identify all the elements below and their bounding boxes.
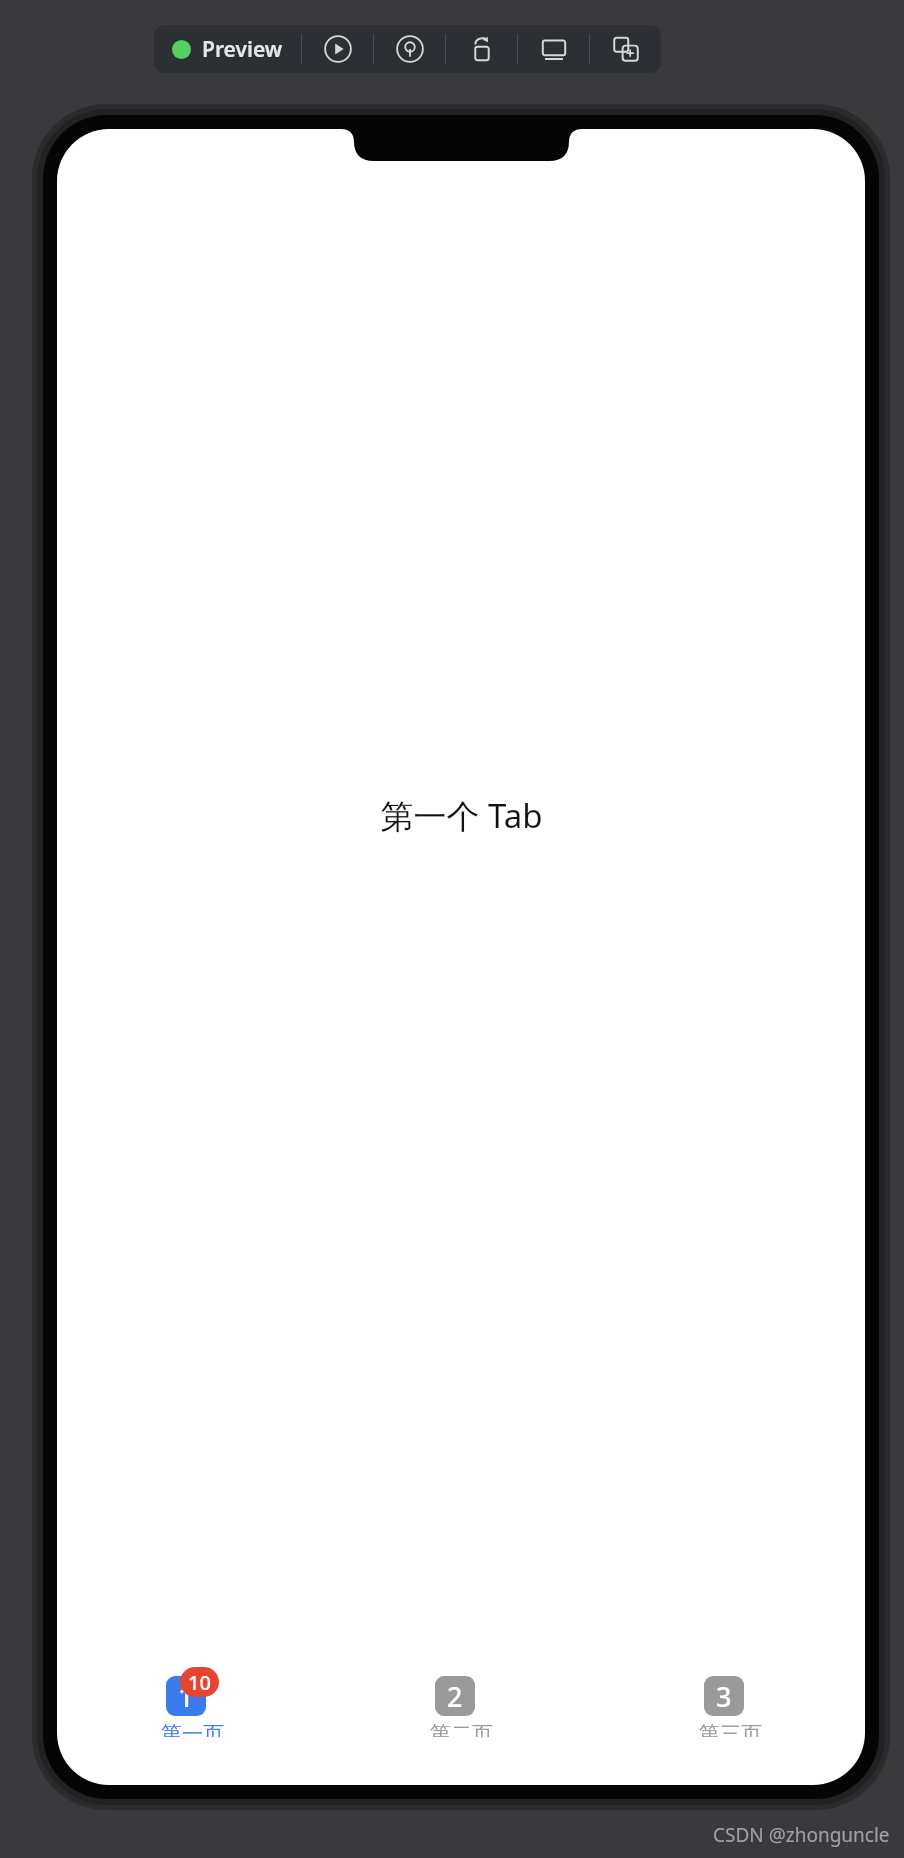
button[interactable]: 3 xyxy=(596,1667,865,1737)
staticText: 1 xyxy=(178,1678,194,1715)
button[interactable]: Preview xyxy=(154,25,301,73)
staticText: 第一页 xyxy=(161,1721,224,1737)
staticText: 10 xyxy=(188,1669,211,1696)
button[interactable]: Add preview xyxy=(590,25,661,73)
button[interactable]: Run preview xyxy=(302,25,373,73)
button[interactable]: 2 xyxy=(327,1667,596,1737)
button[interactable]: Device settings xyxy=(518,25,589,73)
staticText: 3 xyxy=(716,1678,732,1715)
button[interactable]: Inspect xyxy=(374,25,445,73)
staticText: 第三页 xyxy=(699,1721,762,1737)
button[interactable]: 1 xyxy=(57,1667,327,1737)
staticText: 2 xyxy=(447,1678,463,1715)
button[interactable]: Duplicate xyxy=(446,25,517,73)
staticText: CSDN @zhonguncle xyxy=(713,1822,890,1848)
staticText: Preview xyxy=(202,35,283,64)
staticText: 第二页 xyxy=(430,1721,493,1737)
staticText: 第一个 Tab xyxy=(380,793,543,838)
